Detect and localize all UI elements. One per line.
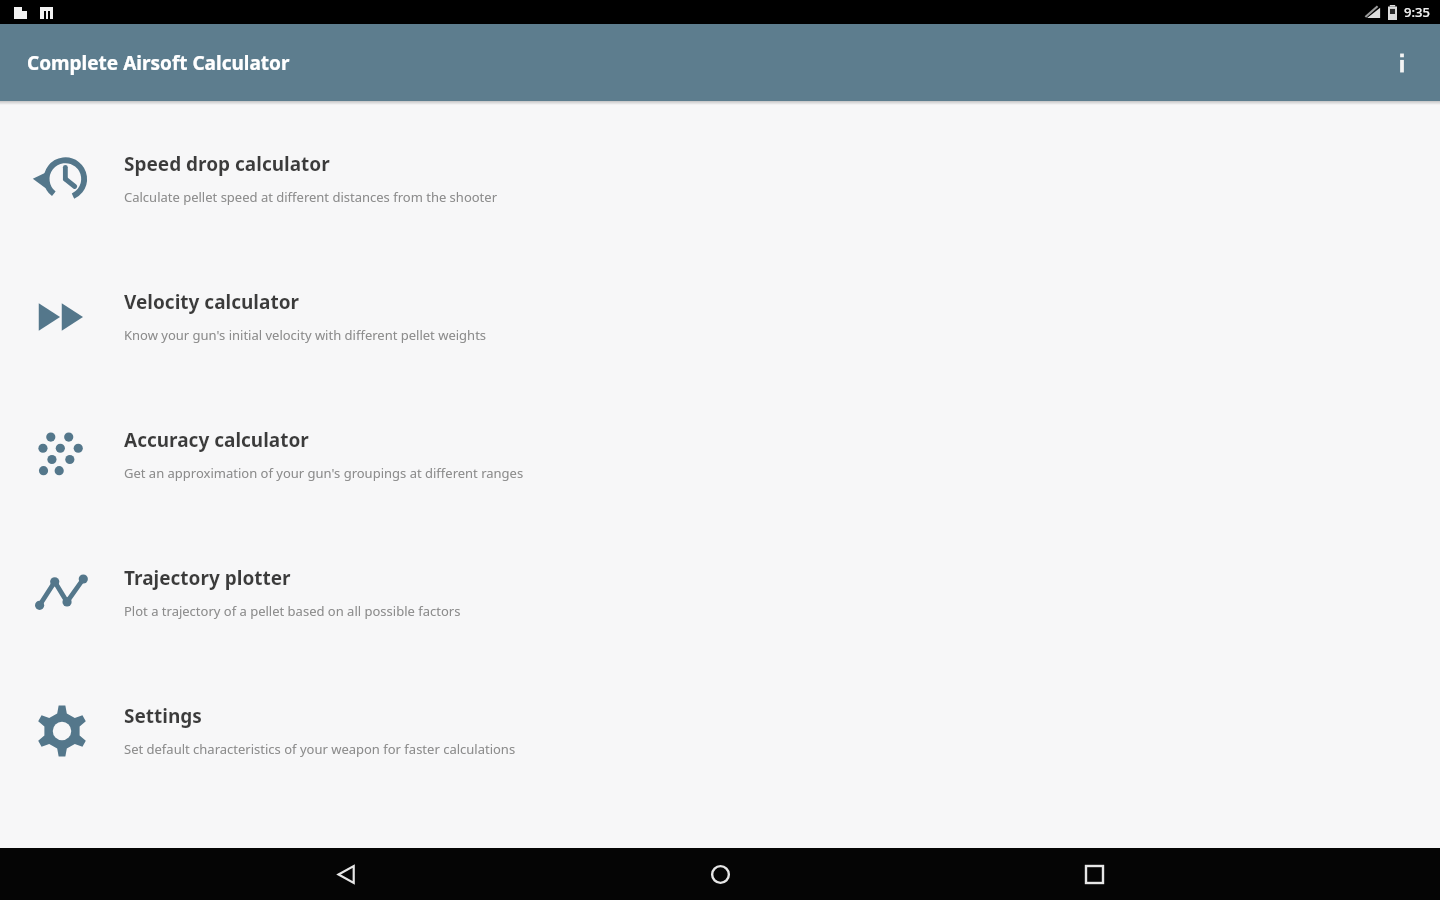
button[interactable]: Back	[318, 848, 374, 900]
staticText: Velocity calculator	[124, 289, 300, 315]
staticText: Trajectory plotter	[124, 565, 291, 591]
staticText: Plot a trajectory of a pellet based on a…	[124, 602, 461, 620]
button[interactable]: Speed drop calculator	[0, 127, 1440, 265]
button[interactable]: Settings	[0, 679, 1440, 817]
staticText: Settings	[124, 703, 202, 729]
staticText: Speed drop calculator	[124, 151, 330, 177]
staticText: Know your gun's initial velocity with di…	[124, 326, 487, 344]
staticText: Accuracy calculator	[124, 427, 309, 453]
button[interactable]: Velocity calculator	[0, 265, 1440, 403]
button[interactable]: About	[1378, 39, 1426, 87]
button[interactable]: Home	[692, 848, 748, 900]
staticText: Complete Airsoft Calculator	[27, 50, 290, 76]
staticText: Set default characteristics of your weap…	[124, 740, 516, 758]
staticText: Get an approximation of your gun's group…	[124, 464, 524, 482]
button[interactable]: Trajectory plotter	[0, 541, 1440, 679]
button[interactable]: Recent apps	[1066, 848, 1122, 900]
button[interactable]: Accuracy calculator	[0, 403, 1440, 541]
staticText: Calculate pellet speed at different dist…	[124, 188, 498, 206]
staticText: 9:35	[1404, 3, 1430, 21]
